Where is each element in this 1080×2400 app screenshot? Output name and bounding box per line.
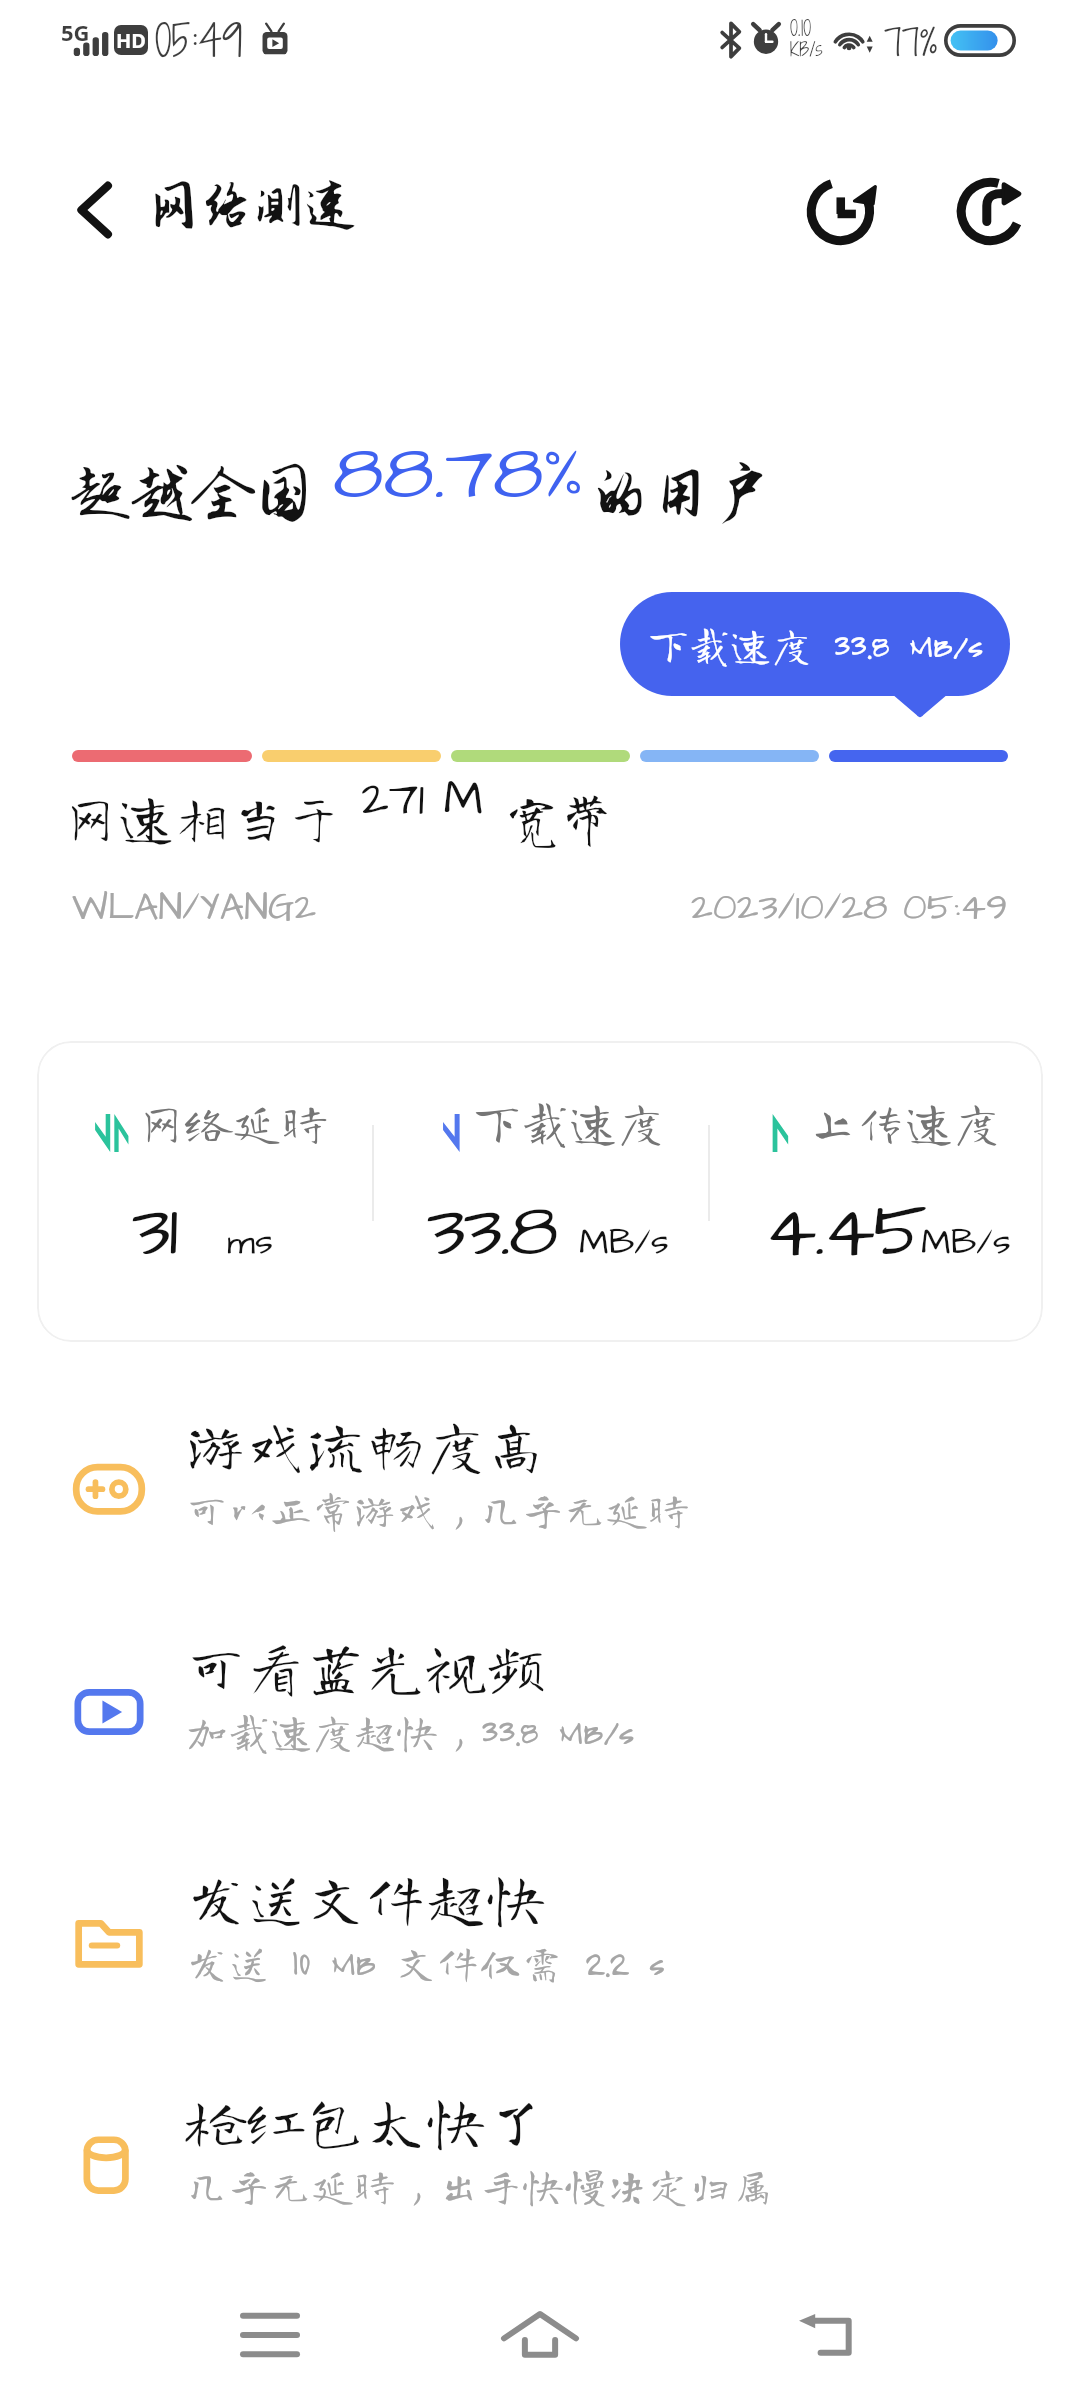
button[interactable]: 测速记录 [794, 160, 894, 260]
staticText: 可以正常游戏，几乎无延时 [186, 1488, 691, 1530]
staticText: ms [227, 1217, 274, 1267]
staticText: 的用户 [589, 460, 773, 528]
staticText: 33.8 [427, 1179, 557, 1285]
button[interactable]: 主页 [460, 2270, 620, 2400]
button[interactable]: 发送文件超快 [0, 1843, 1080, 2043]
staticText: 上传速度 [809, 1098, 1002, 1146]
staticText: 2023/10/28 05:49 [691, 882, 1008, 935]
staticText: 网络测速 [148, 177, 357, 235]
staticText: 加载速度超快，33.8 MB/s [186, 1710, 633, 1752]
staticText: 发送 10 MB 文件仅需 2.2 s [186, 1941, 664, 1983]
staticText: KB/s [790, 36, 823, 62]
staticText: MB/s [921, 1217, 1011, 1267]
button[interactable]: 网络延时 [37, 1041, 1043, 1342]
staticText: HD [116, 27, 146, 54]
staticText: 下载速度 [473, 1098, 666, 1146]
staticText: 271 M [342, 767, 503, 834]
staticText: 可看蓝光视频 [186, 1636, 546, 1696]
staticText: 超越全国 [70, 460, 315, 528]
button[interactable]: 可看蓝光视频 [0, 1612, 1080, 1812]
staticText: 游戏流畅度高 [186, 1414, 546, 1474]
staticText: 下载速度 33.8 MB/s [648, 624, 982, 665]
staticText: 05:49 [155, 10, 243, 71]
staticText: 网络延时 [137, 1098, 330, 1146]
staticText: 4.45 [765, 1179, 925, 1285]
button[interactable]: 返回 [746, 2270, 906, 2400]
staticText: 5G [61, 17, 90, 47]
staticText: 31 [132, 1179, 177, 1285]
staticText: 77% [884, 17, 938, 68]
button[interactable]: Back [72, 177, 357, 243]
staticText: WLAN/YANG2 [72, 882, 317, 935]
staticText: 网速相当于 [62, 789, 342, 845]
button[interactable]: 游戏流畅度高 [0, 1390, 1080, 1590]
staticText: 发送文件超快 [186, 1867, 546, 1927]
button[interactable]: 最近任务 [190, 2270, 350, 2400]
staticText: 88.78% [333, 420, 585, 528]
staticText: 几乎无延时，出手快慢决定归属 [186, 2164, 775, 2206]
other: Back [78, 183, 112, 237]
staticText: 0.10 [790, 14, 812, 43]
staticText: 抢红包太快了 [186, 2090, 546, 2150]
staticText: 宽带 [503, 789, 615, 845]
button[interactable]: 分享 [944, 160, 1044, 260]
button[interactable]: 抢红包太快了 [0, 2066, 1080, 2266]
staticText: MB/s [579, 1217, 669, 1267]
